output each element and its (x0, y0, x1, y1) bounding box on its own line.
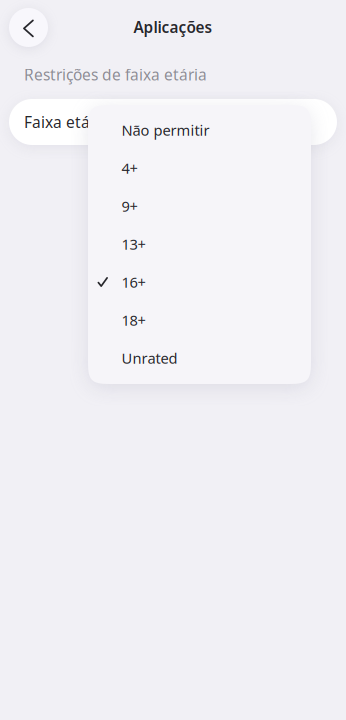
button[interactable]: 13+ (88, 225, 310, 263)
staticText: Unrated (121, 348, 177, 368)
staticText: 4+ (121, 158, 137, 178)
button[interactable]: Unrated (88, 339, 310, 377)
staticText: 18+ (121, 310, 145, 330)
staticText: Faixa etária (24, 111, 109, 133)
button[interactable]: Back (9, 8, 48, 47)
button[interactable]: 18+ (88, 301, 310, 339)
staticText: 16+ (121, 272, 145, 292)
staticText: 13+ (121, 234, 145, 254)
button[interactable]: 16+ (88, 263, 310, 301)
staticText: 9+ (121, 196, 137, 216)
button[interactable]: Faixa etária (9, 99, 337, 145)
button[interactable]: 9+ (88, 187, 310, 225)
staticText: Restrições de faixa etária (24, 64, 207, 85)
staticText: Aplicações (133, 17, 212, 37)
staticText: Não permitir (121, 120, 209, 140)
button[interactable]: Não permitir (88, 111, 310, 149)
button[interactable]: 4+ (88, 149, 310, 187)
